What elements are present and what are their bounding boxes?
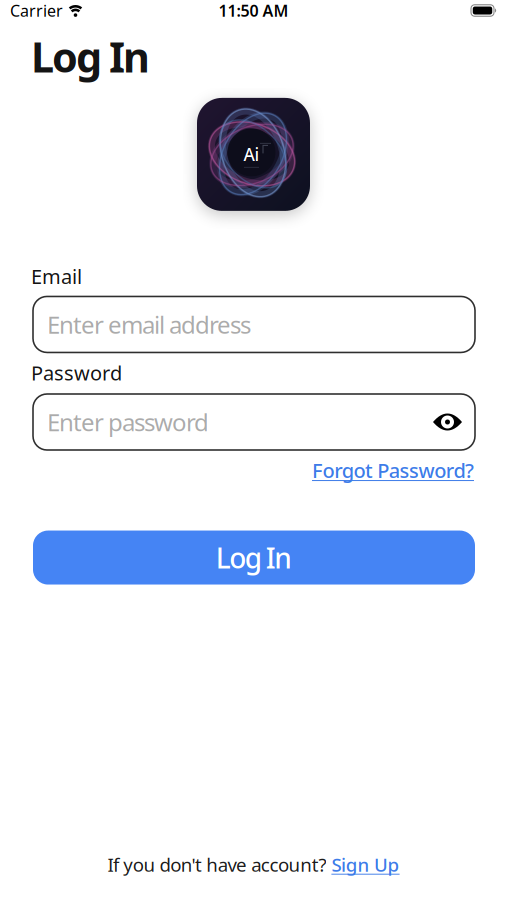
staticText: Enter password: [47, 406, 209, 438]
staticText: Email: [31, 263, 82, 289]
staticText: Password: [31, 359, 122, 386]
button[interactable]: Log In: [33, 531, 475, 585]
button[interactable]: Sign Up: [331, 852, 400, 877]
staticText: Enter email address: [47, 308, 251, 340]
button[interactable]: Forgot Password?: [312, 457, 474, 484]
staticText: Forgot Password?: [312, 457, 474, 484]
staticText: 11:50 AM: [218, 0, 288, 21]
staticText: Carrier: [10, 0, 63, 21]
staticText: Ai: [243, 143, 259, 166]
button[interactable]: Show password: [433, 413, 462, 430]
staticText: If you don't have account?: [107, 852, 326, 877]
staticText: Log In: [216, 539, 292, 576]
staticText: Sign Up: [331, 852, 400, 877]
staticText: Log In: [31, 29, 150, 84]
